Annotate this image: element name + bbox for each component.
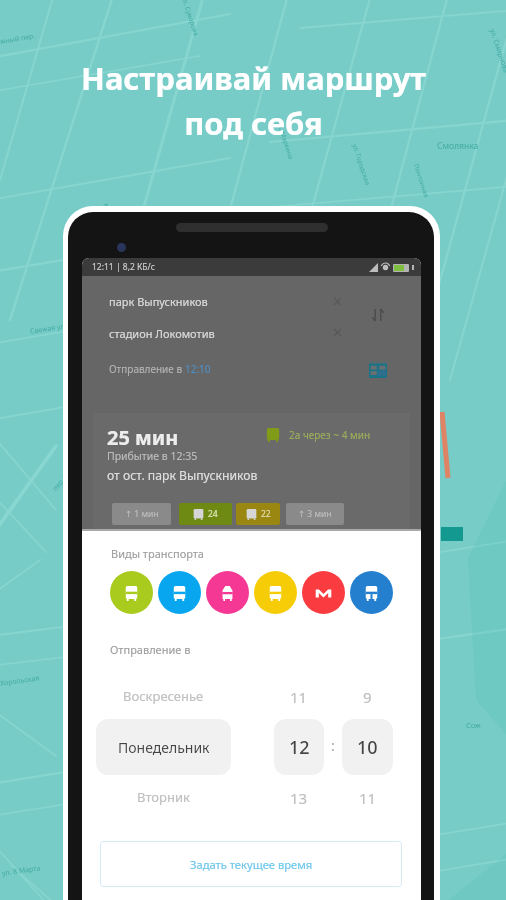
button[interactable]: Pick departure time [365, 356, 391, 382]
staticText: Хорольская [0, 673, 40, 689]
staticText: парк Выпускников [109, 294, 208, 309]
staticText: пер. Уютный [50, 453, 85, 493]
button[interactable]: Minibus [254, 571, 297, 614]
staticText: от ост. парк Выпускников [107, 467, 258, 484]
staticText: Понедельник [118, 738, 210, 757]
staticText: 12:10 [185, 362, 211, 376]
staticText: Отправление в [109, 362, 185, 376]
staticText: ул. Бакинская [65, 780, 113, 798]
button[interactable]: Clear destination [329, 324, 345, 340]
staticText: Виды транспорта [111, 546, 204, 561]
staticText: ул. Суворова [180, 0, 201, 37]
staticText: Красноармейская [101, 202, 128, 259]
staticText: Смолянка [437, 140, 479, 152]
staticText: 11 [359, 788, 377, 808]
staticText: 24 [208, 508, 218, 520]
staticText: ул. Маркина [275, 121, 296, 160]
staticText: 2а через ~ 4 мин [289, 428, 371, 442]
staticText: Прибытие в 12:35 [107, 449, 198, 463]
button[interactable]: ↑ 1 мин [112, 503, 171, 525]
staticText: Воскресенье [123, 687, 204, 705]
staticText: 11 [290, 687, 308, 707]
staticText: Вторник [137, 788, 190, 806]
staticText: 9 [363, 687, 372, 707]
button[interactable]: Tram [206, 571, 249, 614]
staticText: ↑ 3 мин [298, 508, 332, 520]
button[interactable]: Задать текущее время [100, 841, 402, 887]
staticText: ул. 8 Марта [1, 863, 41, 879]
staticText: Отправление в [110, 642, 191, 657]
button[interactable]: Bus [110, 571, 153, 614]
staticText: 25 мин [107, 424, 179, 451]
staticText: Понтонная [412, 162, 431, 199]
button[interactable]: Clear origin [329, 293, 345, 309]
staticText: ↑ 1 мин [125, 508, 159, 520]
staticText: стадион Локомотив [109, 326, 215, 341]
button[interactable]: 24 [179, 503, 232, 525]
staticText: 22 [261, 508, 271, 520]
staticText: 13 [290, 788, 308, 808]
button[interactable]: 25 мин [93, 413, 410, 543]
button[interactable]: Понедельник [96, 719, 231, 775]
button[interactable]: ↑ 3 мин [286, 503, 344, 525]
staticText: ул. Смирнова [487, 28, 506, 74]
button[interactable]: 10 [342, 719, 393, 775]
staticText: жный пер. [0, 31, 37, 47]
staticText: Настраивай маршрут [81, 57, 426, 99]
button[interactable]: 12 [274, 719, 324, 775]
staticText: 12 [289, 735, 310, 760]
staticText: Задать текущее время [190, 857, 313, 872]
button[interactable]: Train [350, 571, 393, 614]
button[interactable]: Trolleybus [158, 571, 201, 614]
button[interactable]: 22 [236, 503, 280, 525]
staticText: под себя [184, 102, 323, 144]
staticText: : [331, 736, 335, 755]
staticText: ул. Кораблёва [111, 250, 160, 268]
button[interactable]: Metro [302, 571, 345, 614]
staticText: ул. Городская [351, 143, 372, 186]
button[interactable]: Swap points [365, 302, 391, 328]
staticText: Свежая ул. [29, 321, 67, 337]
staticText: 12:11 | 8,2 КБ/с [92, 261, 155, 273]
staticText: 10 [357, 735, 378, 760]
staticText: Сож [466, 720, 481, 730]
